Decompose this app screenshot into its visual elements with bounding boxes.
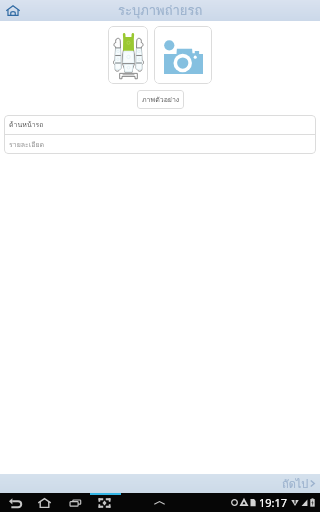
button[interactable]: Home [0,0,25,21]
staticText: ด้านหน้ารถ [9,119,44,130]
button[interactable]: ถัดไป [277,475,320,492]
staticText: ภาพตัวอย่าง [142,94,180,105]
staticText: ถัดไป [282,475,309,492]
button[interactable]: ภาพตัวอย่าง [137,90,184,109]
button[interactable]: ด้านหน้ารถ [4,115,316,134]
button[interactable]: รายละเอียด [4,135,316,154]
button[interactable]: Screenshot [91,493,118,512]
staticText: 19:17 [259,495,288,510]
staticText: ระบุภาพถ่ายรถ [118,0,203,21]
button[interactable]: Show menu [146,493,173,512]
button[interactable]: Recents [62,493,89,512]
button[interactable]: Home [31,493,58,512]
staticText: รายละเอียด [9,139,45,150]
button[interactable]: Take photo [154,26,212,84]
button[interactable]: Back [2,493,29,512]
button[interactable]: Car part diagram [108,26,148,84]
